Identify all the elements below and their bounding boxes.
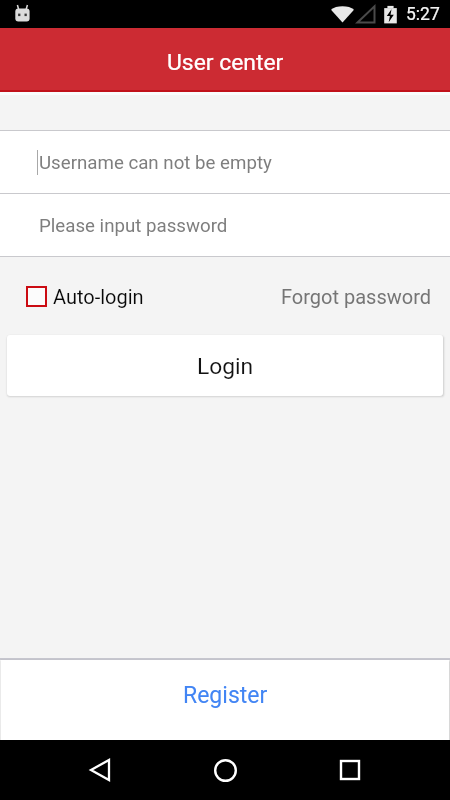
- button[interactable]: Auto-login: [18, 275, 152, 318]
- button[interactable]: Register: [1, 660, 449, 740]
- staticText: Login: [197, 353, 254, 380]
- staticText: Register: [183, 682, 268, 709]
- staticText: User center: [167, 49, 284, 76]
- button[interactable]: Back: [76, 746, 124, 794]
- staticText: Forgot password: [281, 285, 432, 308]
- staticText: Auto-login: [53, 285, 144, 308]
- button[interactable]: Username can not be empty: [0, 131, 450, 193]
- staticText: Please input password: [39, 215, 228, 237]
- staticText: Username can not be empty: [39, 152, 272, 174]
- staticText: 5:27: [406, 4, 440, 25]
- button[interactable]: Forgot password: [273, 275, 440, 318]
- button[interactable]: Please input password: [0, 194, 450, 256]
- button[interactable]: Home: [201, 746, 249, 794]
- button[interactable]: Login: [7, 335, 443, 396]
- button[interactable]: Recent apps: [326, 746, 374, 794]
